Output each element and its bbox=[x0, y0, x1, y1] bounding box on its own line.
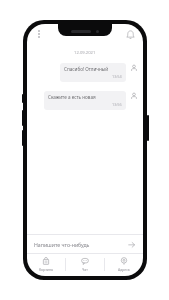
staticText: 12.09.2021 bbox=[74, 50, 96, 56]
staticText: Адреса bbox=[118, 267, 130, 272]
staticText: Спасибо! Отличный товар! bbox=[64, 66, 122, 72]
staticText: Корзина bbox=[39, 267, 53, 272]
button[interactable]: Скажите а есть новая коллекция? bbox=[44, 91, 126, 110]
button[interactable]: Menu bbox=[33, 28, 45, 40]
button[interactable]: Напишите что-нибудь bbox=[27, 235, 143, 253]
staticText: 13:56 bbox=[112, 102, 122, 107]
other: Contact avatar bbox=[129, 91, 138, 100]
button[interactable]: Корзина bbox=[27, 254, 65, 274]
button[interactable]: Адреса bbox=[105, 254, 143, 274]
staticText: 13:54 bbox=[112, 74, 122, 79]
staticText: Чат bbox=[82, 267, 88, 272]
staticText: Скажите а есть новая коллекция? bbox=[48, 94, 122, 100]
other: Contact avatar bbox=[129, 63, 138, 72]
button[interactable]: Чат bbox=[66, 254, 104, 274]
other: Send bbox=[126, 239, 136, 249]
button[interactable]: Notifications bbox=[123, 27, 137, 41]
button[interactable]: Спасибо! Отличный товар! bbox=[60, 63, 126, 82]
staticText: Напишите что-нибудь bbox=[34, 241, 90, 248]
